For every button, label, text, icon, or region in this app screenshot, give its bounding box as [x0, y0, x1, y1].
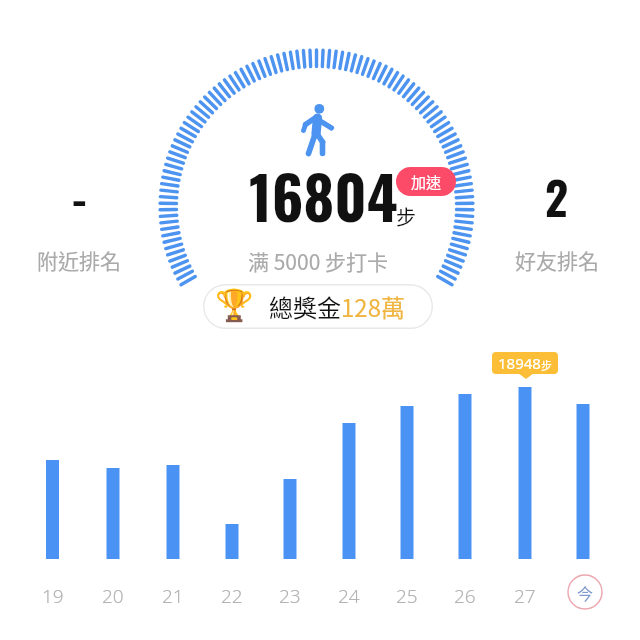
button[interactable]: 21: [153, 583, 193, 607]
button[interactable]: 19: [33, 583, 73, 607]
button[interactable]: Today: [567, 574, 603, 610]
staticText: 16804: [249, 152, 398, 239]
button[interactable]: -: [9, 163, 149, 283]
button[interactable]: 加速: [396, 167, 456, 196]
button[interactable]: 24: [329, 583, 369, 607]
button[interactable]: 23: [270, 583, 310, 607]
staticText: 加速: [411, 171, 442, 193]
staticText: 附近排名: [37, 245, 121, 275]
staticText: 25: [396, 583, 418, 607]
staticText: 23: [279, 583, 301, 607]
staticText: 步: [396, 202, 416, 231]
staticText: 步: [541, 357, 552, 373]
staticText: 24: [338, 583, 360, 607]
staticText: -: [72, 163, 87, 230]
staticText: 27: [514, 583, 536, 607]
staticText: 满 5000 步打卡: [248, 246, 389, 276]
staticText: 今: [577, 581, 594, 604]
other: Steps: [296, 96, 340, 160]
button[interactable]: 18948: [492, 352, 558, 374]
staticText: 21: [162, 583, 184, 607]
staticText: 總獎金: [269, 289, 341, 324]
staticText: 20: [102, 583, 124, 607]
staticText: 22: [221, 583, 243, 607]
button[interactable]: 26: [445, 583, 485, 607]
staticText: 🏆: [215, 287, 254, 323]
button[interactable]: 🏆: [203, 284, 433, 329]
staticText: 18948: [498, 353, 541, 373]
staticText: 19: [42, 583, 64, 607]
button[interactable]: 20: [93, 583, 133, 607]
button[interactable]: 2: [487, 163, 627, 283]
staticText: 128萬: [341, 289, 405, 324]
staticText: 26: [454, 583, 476, 607]
staticText: 好友排名: [515, 245, 599, 275]
staticText: 2: [545, 163, 569, 230]
button[interactable]: 25: [387, 583, 427, 607]
button[interactable]: 27: [505, 583, 545, 607]
button[interactable]: 22: [212, 583, 252, 607]
